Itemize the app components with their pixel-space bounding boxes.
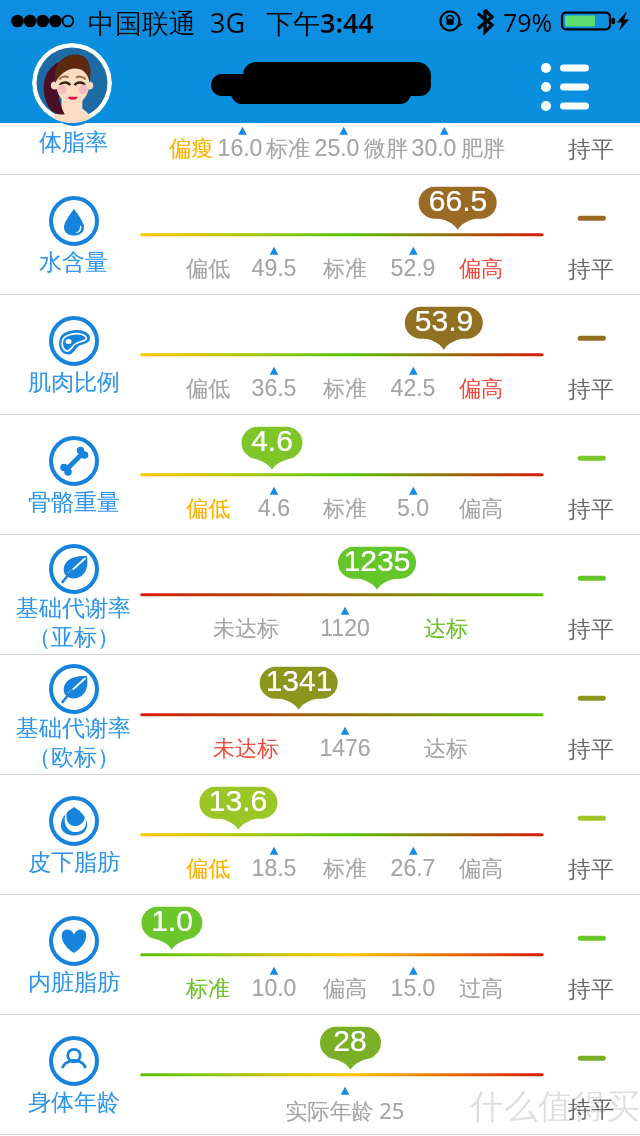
staticText: 10.0 (199, 975, 349, 1001)
staticText: 内脏脂肪 (28, 968, 120, 997)
staticText: 偏低 (133, 255, 283, 283)
staticText: 偏低 (133, 855, 283, 883)
staticText: 下午3:44 (266, 4, 374, 41)
staticText: 53.9 (384, 304, 504, 338)
button[interactable]: 基础代谢率 (0, 535, 640, 655)
staticText: 持平 (545, 735, 637, 764)
staticText: 未达标 (171, 615, 321, 643)
staticText: 49.5 (199, 255, 349, 281)
staticText: 1341 (239, 664, 359, 698)
staticText: 偏高 (406, 855, 556, 883)
staticText: 36.5 (199, 375, 349, 401)
staticText: 什么值得买 (470, 1085, 640, 1128)
staticText: 偏瘦 (116, 135, 266, 163)
staticText: 达标 (371, 615, 521, 643)
staticText: 1476 (270, 735, 420, 761)
staticText: 标准 (270, 855, 420, 883)
staticText: 肌肉比例 (28, 368, 120, 397)
staticText: 达标 (371, 735, 521, 763)
staticText: 42.5 (338, 375, 488, 401)
staticText: （欧标） (28, 743, 120, 772)
staticText: 标准 (270, 255, 420, 283)
staticText: 偏高 (270, 975, 420, 1003)
button[interactable]: 皮下脂肪 (0, 775, 640, 895)
staticText: 持平 (545, 135, 637, 164)
staticText: 肥胖 (408, 135, 558, 163)
staticText: 中国联通 3G (88, 4, 246, 41)
staticText: 水含量 (39, 248, 108, 277)
staticText: （亚标） (28, 623, 120, 652)
staticText: 偏高 (406, 375, 556, 403)
staticText: 持平 (545, 375, 637, 404)
staticText: 持平 (545, 855, 637, 884)
staticText: 过高 (406, 975, 556, 1003)
staticText: 28 (290, 1024, 410, 1058)
staticText: 基础代谢率 (16, 714, 131, 743)
button[interactable]: 体脂率 (0, 55, 640, 175)
staticText: 1235 (317, 544, 437, 578)
staticText: 持平 (545, 495, 637, 524)
button[interactable]: 水含量 (0, 175, 640, 295)
staticText: 微胖 (311, 135, 461, 163)
button[interactable]: 内脏脂肪 (0, 895, 640, 1015)
staticText: 未达标 (171, 735, 321, 763)
staticText: 基础代谢率 (16, 594, 131, 623)
staticText: 25.0 (262, 135, 412, 161)
button[interactable]: 肌肉比例 (0, 295, 640, 415)
staticText: 1.0 (112, 904, 232, 938)
staticText: 26.7 (338, 855, 488, 881)
button[interactable]: Profile (32, 43, 112, 123)
staticText: 持平 (545, 975, 637, 1004)
staticText: 皮下脂肪 (28, 848, 120, 877)
staticText: 16.0 (165, 135, 315, 161)
staticText: 4.6 (212, 424, 332, 458)
staticText: 79% (503, 5, 553, 39)
staticText: 持平 (545, 255, 637, 284)
staticText: 5.0 (338, 495, 488, 521)
staticText: 15.0 (338, 975, 488, 1001)
button[interactable]: Menu (528, 56, 600, 110)
staticText: 标准 (270, 495, 420, 523)
staticText: 偏高 (406, 255, 556, 283)
staticText: 骨骼重量 (28, 488, 120, 517)
button[interactable]: 身体年龄 (0, 1015, 640, 1135)
staticText: 标准 (213, 135, 363, 163)
staticText: 18.5 (199, 855, 349, 881)
staticText: 偏高 (406, 495, 556, 523)
button[interactable]: 基础代谢率 (0, 655, 640, 775)
staticText: 标准 (270, 375, 420, 403)
staticText: 30.0 (359, 135, 509, 161)
staticText: 身体年龄 (28, 1088, 120, 1117)
staticText: 13.6 (178, 784, 298, 818)
staticText: 66.5 (398, 184, 518, 218)
staticText: 体脂率 (39, 128, 108, 157)
staticText: 52.9 (338, 255, 488, 281)
staticText: 偏低 (133, 495, 283, 523)
staticText: 4.6 (199, 495, 349, 521)
staticText: 持平 (545, 1095, 637, 1124)
staticText: 偏低 (133, 375, 283, 403)
staticText: 1120 (270, 615, 420, 641)
staticText: 持平 (545, 615, 637, 644)
staticText: 标准 (133, 975, 283, 1003)
staticText: 实际年龄 25 (270, 1095, 420, 1125)
button[interactable]: 骨骼重量 (0, 415, 640, 535)
